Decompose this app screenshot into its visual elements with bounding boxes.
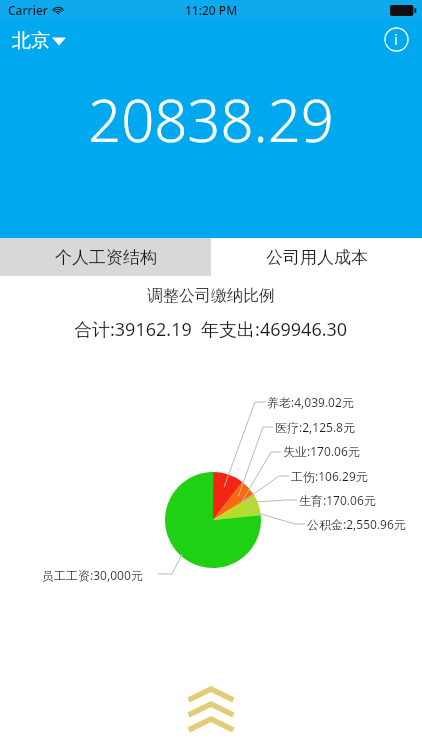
staticText: 个人工资结构 xyxy=(55,247,157,268)
staticText: 员工工资:30,000元 xyxy=(42,567,143,583)
staticText: 养老:4,039.02元 xyxy=(267,394,354,410)
button[interactable]: Info xyxy=(380,23,412,55)
staticText: 生育:170.06元 xyxy=(299,492,376,508)
staticText: 北京 xyxy=(12,29,50,53)
staticText: Carrier xyxy=(8,2,48,18)
staticText: 调整公司缴纳比例 xyxy=(147,286,275,306)
staticText: 失业:170.06元 xyxy=(283,443,360,459)
button[interactable]: 调整公司缴纳比例 xyxy=(0,286,422,306)
staticText: 工伤:106.29元 xyxy=(291,468,368,484)
button[interactable]: 北京 xyxy=(8,26,70,56)
button[interactable]: 个人工资结构 xyxy=(0,238,211,276)
staticText: 公积金:2,550.96元 xyxy=(307,516,406,532)
staticText: 医疗:2,125.8元 xyxy=(275,419,355,435)
staticText: 11:20 PM xyxy=(185,2,238,18)
button[interactable]: Expand xyxy=(0,688,422,750)
staticText: 合计:39162.19 年支出:469946.30 xyxy=(74,317,348,342)
staticText: 公司用人成本 xyxy=(266,247,368,268)
staticText: i xyxy=(394,30,398,49)
staticText: 20838.29 xyxy=(88,80,334,159)
button[interactable]: 公司用人成本 xyxy=(211,238,422,276)
